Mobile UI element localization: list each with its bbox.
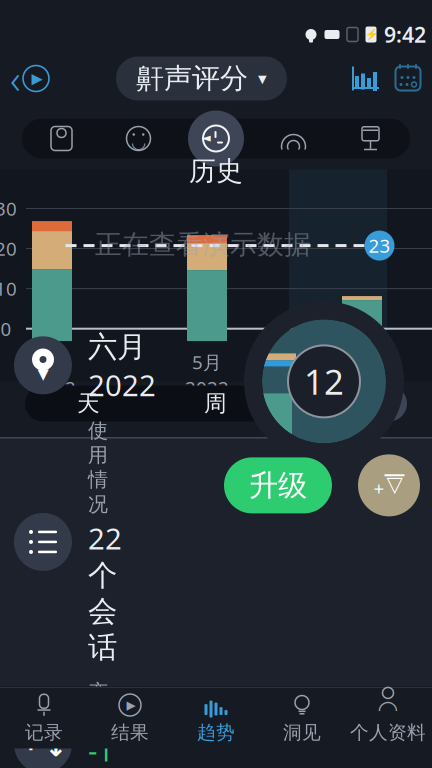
staticText: 使用情况 <box>88 418 108 517</box>
staticText: 23 <box>368 233 390 258</box>
button[interactable]: 趋势 <box>173 688 259 748</box>
staticText: 正在查看演示数据 <box>95 228 311 261</box>
button[interactable]: Weight <box>23 116 100 160</box>
staticText: 鼾声评分 <box>136 61 248 96</box>
staticText: ◡ <box>131 132 146 152</box>
staticText: 6月 <box>345 350 375 374</box>
button[interactable]: 鼾声评分 <box>116 56 287 100</box>
staticText: 12 <box>304 358 344 404</box>
staticText: ▶ <box>31 70 42 87</box>
button[interactable]: Calendar <box>386 54 430 102</box>
staticText: 9:42 <box>384 20 426 49</box>
staticText: 2022 <box>32 375 76 400</box>
button[interactable]: 天 <box>25 385 152 421</box>
staticText: 变化 <box>88 680 108 729</box>
button[interactable]: 升级 <box>224 457 332 513</box>
staticText: 30 <box>0 196 17 221</box>
button[interactable]: 月 <box>279 385 407 421</box>
button[interactable]: Breathing <box>255 116 332 160</box>
staticText: ▽ <box>386 472 402 496</box>
staticText: 4月 <box>39 350 69 374</box>
button[interactable]: ▶ <box>87 688 173 748</box>
staticText: 记录 <box>25 721 63 744</box>
button[interactable]: ◠ <box>345 688 431 748</box>
staticText: ▼ <box>37 365 48 382</box>
staticText: 趋势 <box>197 721 235 744</box>
button[interactable]: 记录 <box>1 688 87 748</box>
staticText: 升级 <box>249 467 307 503</box>
staticText: 周 <box>204 390 227 417</box>
staticText: 结果 <box>111 721 149 744</box>
staticText: -15 <box>88 731 114 768</box>
button[interactable]: Mood <box>100 116 177 160</box>
staticText: 六月 2022 <box>88 326 156 404</box>
staticText: ↓ <box>44 732 66 762</box>
staticText: 0 <box>0 316 11 341</box>
staticText: 5月 <box>192 350 222 374</box>
button[interactable]: Back to playback <box>2 54 57 102</box>
staticText: ↑ <box>19 726 41 756</box>
staticText: 20 <box>0 236 17 261</box>
staticText: 月 <box>331 390 354 417</box>
button[interactable]: History <box>177 109 255 167</box>
staticText: 2022 <box>338 375 382 400</box>
staticText: ▶ <box>126 698 135 712</box>
button[interactable]: Add filter <box>358 454 420 516</box>
staticText: 10 <box>0 276 17 301</box>
staticText: + <box>373 476 384 501</box>
staticText: ‹ <box>10 52 21 105</box>
staticText: 2022 <box>185 375 229 400</box>
staticText: ▾ <box>258 69 267 88</box>
staticText: 历史 <box>189 155 243 188</box>
staticText: ⚡ <box>364 28 377 41</box>
staticText: ◄ <box>201 131 210 144</box>
staticText: 个人资料 <box>350 721 426 744</box>
button[interactable]: 洞见 <box>259 688 345 748</box>
button[interactable]: Alcohol <box>332 116 409 160</box>
staticText: ◠ <box>377 695 398 723</box>
staticText: 洞见 <box>283 721 321 744</box>
staticText: 天 <box>77 390 100 417</box>
button[interactable]: Statistics <box>346 54 386 102</box>
staticText: 22 个会话 <box>88 518 122 665</box>
button[interactable]: 周 <box>152 385 279 421</box>
